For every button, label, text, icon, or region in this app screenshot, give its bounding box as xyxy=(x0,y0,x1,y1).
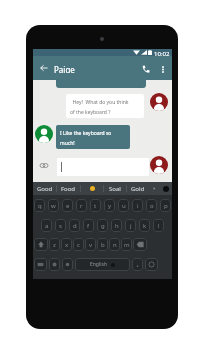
staticText: Food xyxy=(61,185,76,193)
staticText: Hey! What do you think of the keyboard ? xyxy=(70,99,129,115)
button[interactable]: h xyxy=(111,219,122,232)
button[interactable]: Enter xyxy=(145,258,158,271)
button[interactable]: Call xyxy=(140,63,152,75)
button[interactable]: Back xyxy=(38,62,50,74)
staticText: e xyxy=(66,202,70,210)
button[interactable]: l xyxy=(153,219,164,232)
button[interactable]: g xyxy=(97,219,108,232)
button[interactable]: Soal xyxy=(104,182,126,195)
button[interactable]: o xyxy=(146,199,157,212)
button[interactable]: u xyxy=(118,199,129,212)
button[interactable]: Symbols xyxy=(34,258,47,271)
staticText: f xyxy=(87,222,90,230)
button[interactable]: Shift xyxy=(34,238,48,251)
button[interactable]: s xyxy=(55,219,66,232)
button[interactable]: Period xyxy=(132,258,143,271)
staticText: g xyxy=(101,222,105,230)
staticText: h xyxy=(115,222,119,230)
button[interactable]: More suggestions xyxy=(149,182,160,195)
staticText: k xyxy=(143,222,147,230)
button[interactable]: English xyxy=(75,258,130,271)
button[interactable]: Emoji xyxy=(49,258,60,271)
button[interactable]: c xyxy=(73,238,84,251)
staticText: b xyxy=(101,241,105,249)
button[interactable]: f xyxy=(83,219,94,232)
staticText: c xyxy=(77,241,80,249)
staticText: English xyxy=(90,261,108,268)
staticText: Gold xyxy=(131,185,145,193)
staticText: a xyxy=(45,222,49,230)
button[interactable]: t xyxy=(90,199,101,212)
button[interactable]: v xyxy=(85,238,96,251)
button[interactable]: More options xyxy=(157,64,168,75)
staticText: Soal xyxy=(109,185,121,193)
staticText: d xyxy=(73,222,77,230)
staticText: w xyxy=(51,202,56,210)
staticText: Good xyxy=(37,185,53,193)
staticText: i xyxy=(137,202,139,210)
staticText: v xyxy=(89,241,93,249)
staticText: t xyxy=(94,202,97,210)
staticText: y xyxy=(108,202,112,210)
button[interactable]: Attach xyxy=(40,162,48,168)
button[interactable]: Gold xyxy=(127,182,149,195)
button[interactable]: Food xyxy=(57,182,80,195)
button[interactable] xyxy=(57,158,149,176)
staticText: j xyxy=(130,222,132,230)
staticText: o xyxy=(150,202,154,210)
staticText: x xyxy=(65,241,69,249)
button[interactable]: Voice input xyxy=(160,182,172,195)
staticText: l xyxy=(158,222,160,230)
button[interactable]: y xyxy=(104,199,115,212)
button[interactable]: e xyxy=(62,199,73,212)
staticText: q xyxy=(38,202,42,210)
staticText: r xyxy=(80,202,83,210)
staticText: 10:02 xyxy=(154,50,170,57)
button[interactable]: w xyxy=(48,199,59,212)
button[interactable]: j xyxy=(125,219,136,232)
staticText: z xyxy=(53,241,56,249)
button[interactable]: a xyxy=(41,219,52,232)
button[interactable]: k xyxy=(139,219,150,232)
button[interactable]: q xyxy=(34,199,45,212)
button[interactable]: m xyxy=(121,238,132,251)
button[interactable]: Good xyxy=(33,182,56,195)
button[interactable]: I Like the keyboard so much! xyxy=(56,125,130,149)
staticText: m xyxy=(124,241,130,249)
button[interactable]: Hey! What do you think of the keyboard ? xyxy=(66,94,144,118)
staticText: n xyxy=(113,241,117,249)
staticText: s xyxy=(59,222,62,230)
button[interactable]: b xyxy=(97,238,108,251)
button[interactable]: r xyxy=(76,199,87,212)
button[interactable]: d xyxy=(69,219,80,232)
staticText: Paige xyxy=(54,64,75,75)
staticText: u xyxy=(122,202,126,210)
button[interactable] xyxy=(81,182,103,195)
button[interactable]: i xyxy=(132,199,143,212)
button[interactable]: x xyxy=(61,238,72,251)
button[interactable]: z xyxy=(49,238,60,251)
button[interactable]: Backspace xyxy=(133,238,147,251)
staticText: p xyxy=(164,202,168,210)
button[interactable]: n xyxy=(109,238,120,251)
button[interactable]: p xyxy=(160,199,171,212)
staticText: I Like the keyboard so much! xyxy=(60,130,112,146)
button[interactable]: Settings xyxy=(62,258,73,271)
